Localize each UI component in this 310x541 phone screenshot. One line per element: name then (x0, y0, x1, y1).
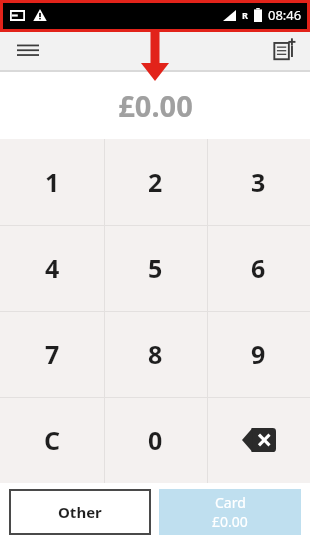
button[interactable]: 4 (0, 225, 104, 311)
button[interactable]: 6 (207, 225, 310, 311)
button[interactable]: 5 (104, 225, 207, 311)
staticText: 08:46 (268, 6, 302, 24)
button[interactable]: 1 (0, 139, 104, 225)
button[interactable]: Menu (8, 30, 48, 70)
staticText: 2 (148, 165, 163, 199)
staticText: £0.00 (212, 512, 248, 531)
button[interactable]: New transaction (264, 30, 304, 70)
button[interactable]: 2 (104, 139, 207, 225)
staticText: 3 (251, 165, 266, 199)
staticText: 8 (148, 337, 163, 371)
staticText: 7 (45, 337, 60, 371)
button[interactable]: C (0, 397, 104, 483)
button[interactable]: 7 (0, 311, 104, 397)
button[interactable]: 9 (207, 311, 310, 397)
staticText: 0 (148, 423, 163, 457)
staticText: 1 (45, 165, 60, 199)
button[interactable]: Card (159, 489, 301, 535)
staticText: 9 (251, 337, 266, 371)
button[interactable]: 3 (207, 139, 310, 225)
staticText: C (44, 423, 61, 457)
button[interactable]: 0 (104, 397, 207, 483)
staticText: 6 (251, 251, 266, 285)
staticText: Card (215, 493, 246, 512)
button[interactable]: Other (9, 489, 151, 535)
staticText: Other (58, 502, 102, 522)
button[interactable]: Backspace (207, 397, 310, 483)
staticText: £0.00 (118, 86, 193, 125)
staticText: 5 (148, 251, 163, 285)
staticText: R (242, 9, 248, 21)
button[interactable]: 8 (104, 311, 207, 397)
staticText: 4 (45, 251, 60, 285)
